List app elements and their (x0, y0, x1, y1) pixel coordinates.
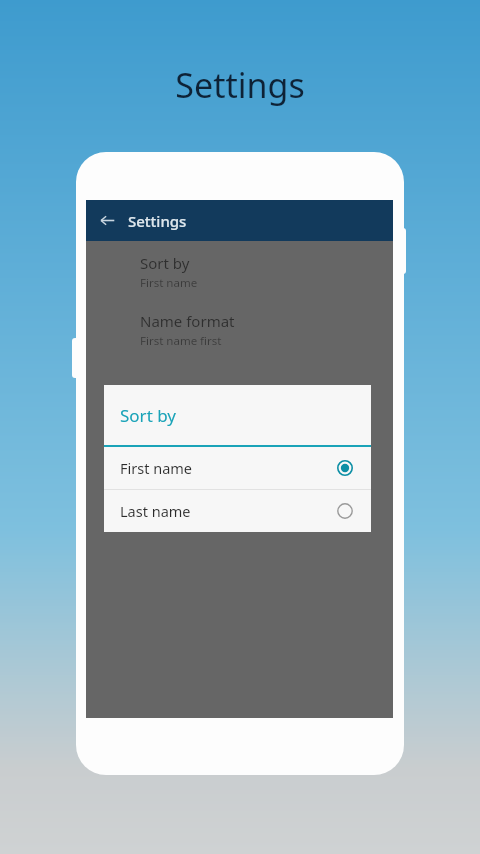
staticText: First name (120, 458, 193, 478)
button[interactable]: Last name (104, 490, 371, 532)
button[interactable]: First name (104, 447, 371, 489)
staticText: Settings (175, 62, 305, 108)
staticText: Settings (128, 211, 187, 231)
staticText: Sort by (140, 253, 190, 273)
button[interactable]: Back (86, 200, 128, 241)
button[interactable]: Name format (86, 309, 393, 351)
staticText: First name first (140, 333, 222, 349)
staticText: First name (140, 275, 198, 291)
staticText: Sort by (120, 404, 176, 427)
staticText: Name format (140, 311, 235, 331)
staticText: Last name (120, 501, 191, 521)
button[interactable]: Sort by (86, 251, 393, 293)
